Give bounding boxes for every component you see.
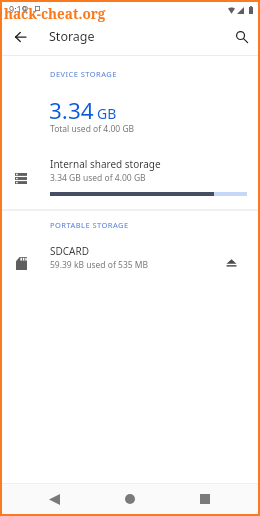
staticText: GB	[97, 104, 117, 123]
staticText: Storage	[49, 28, 95, 45]
staticText: Total used of 4.00 GB	[50, 123, 135, 135]
staticText: 59.39 kB used of 535 MB	[50, 259, 149, 271]
button[interactable]: Home	[117, 486, 143, 512]
button[interactable]: Eject	[218, 249, 244, 275]
staticText: 3.34	[49, 95, 94, 126]
button[interactable]: Recents	[192, 486, 218, 512]
staticText: PORTABLE STORAGE	[50, 220, 129, 230]
staticText: Internal shared storage	[50, 157, 161, 171]
button[interactable]: Back	[6, 22, 35, 51]
staticText: 3.34 GB used of 4.00 GB	[50, 172, 146, 184]
staticText: 9:19	[9, 3, 27, 15]
button[interactable]: Back	[41, 486, 67, 512]
staticText: SDCARD	[50, 244, 90, 258]
button[interactable]: SDCARD	[2, 244, 258, 271]
staticText: DEVICE STORAGE	[50, 69, 117, 79]
button[interactable]: Internal shared storage	[2, 157, 258, 196]
button[interactable]: Search	[229, 24, 255, 50]
staticText: hack-cheat.org	[4, 5, 106, 23]
